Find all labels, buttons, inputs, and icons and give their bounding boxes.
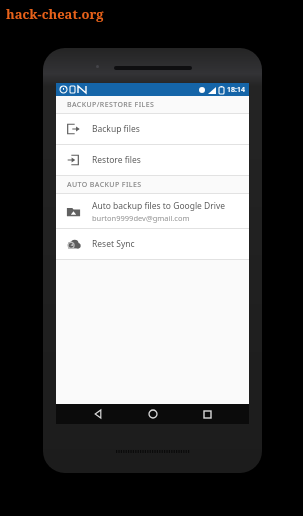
staticText: Backup files — [92, 123, 140, 135]
button[interactable]: Recents — [195, 404, 219, 424]
other: Backup files — [65, 121, 81, 137]
button[interactable]: Restore files — [56, 145, 249, 175]
staticText: AUTO BACKUP FILES — [67, 180, 142, 190]
other: Reset Sync — [65, 236, 81, 252]
button[interactable]: Backup files — [56, 114, 249, 144]
other: Restore files — [65, 152, 81, 168]
staticText: Reset Sync — [92, 238, 135, 250]
other: Auto backup — [65, 203, 81, 219]
button[interactable]: Auto backup — [56, 194, 249, 228]
button[interactable]: Home — [141, 404, 165, 424]
button[interactable]: Back — [86, 404, 110, 424]
staticText: BACKUP/RESTORE FILES — [67, 100, 155, 110]
button[interactable]: Reset Sync — [56, 229, 249, 259]
staticText: Restore files — [92, 154, 141, 166]
staticText: 18:14 — [227, 85, 245, 95]
staticText: Auto backup files to Google Drive — [92, 200, 226, 212]
staticText: hack-cheat.org — [6, 5, 104, 23]
staticText: burton9999dev@gmail.com — [92, 213, 190, 223]
